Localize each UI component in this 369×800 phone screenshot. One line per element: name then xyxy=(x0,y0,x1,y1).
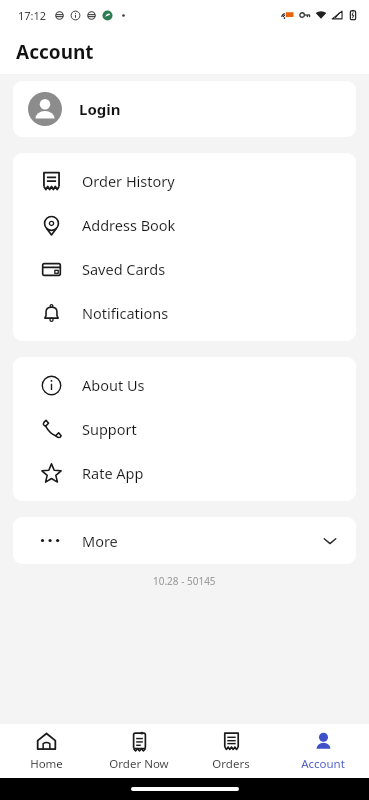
staticText: More xyxy=(82,531,118,551)
staticText: Notifications xyxy=(82,303,169,323)
button[interactable]: Saved Cards xyxy=(13,247,356,291)
staticText: Address Book xyxy=(82,215,176,235)
button[interactable]: Orders xyxy=(185,724,277,778)
staticText: Rate App xyxy=(82,463,144,483)
staticText: Account xyxy=(301,756,345,772)
staticText: Orders xyxy=(212,756,250,772)
staticText: 17:12 xyxy=(18,8,47,23)
button[interactable]: Support xyxy=(13,407,356,451)
staticText: About Us xyxy=(82,375,145,395)
staticText: Saved Cards xyxy=(82,259,166,279)
button[interactable]: Address Book xyxy=(13,203,356,247)
staticText: Login xyxy=(79,99,121,119)
staticText: 10.28 - 50145 xyxy=(153,574,216,588)
button[interactable]: Rate App xyxy=(13,451,356,495)
button[interactable]: Login xyxy=(13,81,356,137)
staticText: Home xyxy=(30,756,63,772)
button[interactable]: Account xyxy=(277,724,369,778)
staticText: Order Now xyxy=(109,756,169,772)
button[interactable]: Notifications xyxy=(13,291,356,335)
button[interactable]: Order Now xyxy=(93,724,185,778)
staticText: Account xyxy=(16,39,94,65)
button[interactable]: Order History xyxy=(13,159,356,203)
button[interactable]: More xyxy=(13,517,356,564)
staticText: Order History xyxy=(82,171,175,191)
button[interactable]: Home xyxy=(0,724,93,778)
staticText: Support xyxy=(82,419,137,439)
button[interactable]: About Us xyxy=(13,363,356,407)
